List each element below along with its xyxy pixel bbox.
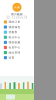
staticText: 地址管理: [9, 51, 21, 54]
staticText: ID: 12345678: [6, 16, 27, 19]
staticText: 优惠券: [9, 30, 18, 34]
staticText: 我的收藏: [9, 41, 21, 44]
button[interactable]: 优惠券: [0, 30, 34, 35]
button[interactable]: 我的收藏: [0, 40, 34, 45]
button[interactable]: 积分中心: [0, 35, 34, 40]
button[interactable]: 设置: [0, 55, 34, 60]
button[interactable]: 我的订单: [0, 19, 34, 24]
staticText: 我的订单: [9, 20, 21, 24]
staticText: 我的钱包: [9, 25, 21, 29]
staticText: 用户昵称: [11, 13, 23, 16]
button[interactable]: 我的钱包: [0, 24, 34, 30]
staticText: 设置: [9, 56, 15, 59]
staticText: 头像: [14, 6, 20, 9]
button[interactable]: 地址管理: [0, 50, 34, 55]
staticText: 会员中心: [9, 46, 21, 49]
staticText: 积分中心: [9, 36, 21, 39]
button[interactable]: 会员中心: [0, 45, 34, 50]
